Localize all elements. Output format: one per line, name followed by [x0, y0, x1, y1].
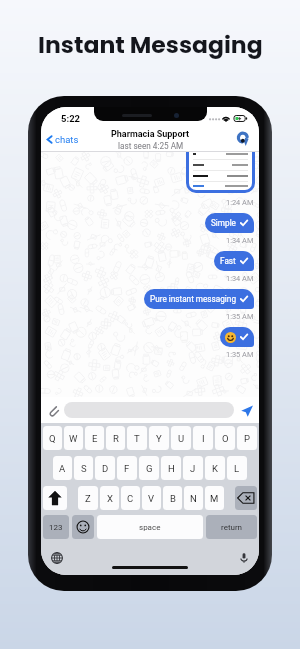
button[interactable]: [186, 152, 255, 193]
button[interactable]: Y: [149, 426, 169, 450]
staticText: 1:35 AM: [226, 350, 254, 359]
button[interactable]: P: [237, 426, 257, 450]
button[interactable]: Q: [43, 426, 62, 450]
button[interactable]: R: [106, 426, 125, 450]
button[interactable]: N: [184, 486, 203, 510]
button[interactable]: Shift: [43, 486, 67, 510]
staticText: E: [92, 433, 98, 444]
staticText: M: [210, 493, 219, 504]
button[interactable]: K: [205, 456, 225, 480]
button[interactable]: Change keyboard: [49, 550, 64, 565]
button[interactable]: Send message: [239, 403, 254, 418]
staticText: Instant Messaging: [38, 28, 263, 61]
staticText: T: [134, 433, 140, 444]
button[interactable]: Fast: [214, 251, 254, 271]
button[interactable]: M: [205, 486, 224, 510]
staticText: return: [221, 523, 243, 532]
button[interactable]: Smiley message: [220, 327, 254, 347]
button[interactable]: Simple: [205, 213, 254, 233]
staticText: 1:34 AM: [226, 236, 254, 245]
button[interactable]: J: [183, 456, 203, 480]
staticText: U: [178, 433, 185, 444]
button[interactable]: return: [206, 515, 257, 539]
staticText: P: [244, 433, 250, 444]
button[interactable]: T: [127, 426, 147, 450]
staticText: L: [234, 463, 240, 474]
staticText: Pure instant messaging: [150, 294, 236, 304]
button[interactable]: V: [142, 486, 161, 510]
button[interactable]: Z: [78, 486, 98, 510]
staticText: 123: [49, 523, 63, 532]
staticText: X: [107, 493, 113, 504]
staticText: O: [222, 433, 229, 444]
staticText: 5:22: [61, 113, 81, 124]
button[interactable]: I: [193, 426, 213, 450]
button[interactable]: L: [227, 456, 247, 480]
button[interactable]: B: [163, 486, 182, 510]
button[interactable]: Attach file: [46, 403, 61, 418]
staticText: S: [81, 463, 87, 474]
button[interactable]: S: [74, 456, 93, 480]
button[interactable]: Emoji: [72, 515, 94, 539]
staticText: last seen 4:25 AM: [118, 141, 184, 151]
staticText: chats: [55, 134, 79, 145]
button[interactable]: D: [95, 456, 115, 480]
button[interactable]: Contact profile: [235, 131, 252, 148]
staticText: 1:35 AM: [226, 312, 254, 321]
button[interactable]: X: [100, 486, 119, 510]
button[interactable]: Backspace: [235, 486, 257, 510]
staticText: R: [113, 433, 119, 444]
staticText: D: [102, 463, 109, 474]
button[interactable]: O: [215, 426, 235, 450]
staticText: Simple: [211, 218, 236, 228]
staticText: C: [127, 493, 134, 504]
staticText: B: [170, 493, 176, 504]
staticText: F: [124, 463, 130, 474]
button[interactable]: F: [117, 456, 137, 480]
button[interactable]: space: [97, 515, 203, 539]
button[interactable]: G: [139, 456, 159, 480]
staticText: space: [139, 523, 161, 532]
staticText: K: [212, 463, 218, 474]
button[interactable]: W: [64, 426, 83, 450]
staticText: Z: [85, 493, 91, 504]
button[interactable]: 123: [43, 515, 69, 539]
button[interactable]: H: [161, 456, 181, 480]
staticText: H: [168, 463, 175, 474]
button[interactable]: Voice input: [236, 550, 251, 565]
staticText: Pharmacia Support: [111, 129, 190, 140]
button[interactable]: E: [85, 426, 104, 450]
staticText: J: [190, 463, 196, 474]
staticText: Fast: [220, 256, 236, 266]
staticText: 1:34 AM: [226, 274, 254, 283]
button[interactable]: U: [171, 426, 191, 450]
staticText: Y: [156, 433, 162, 444]
staticText: A: [59, 463, 66, 474]
staticText: W: [69, 433, 78, 444]
button[interactable]: C: [121, 486, 140, 510]
staticText: V: [148, 493, 155, 504]
staticText: Q: [49, 433, 56, 444]
button[interactable]: [64, 402, 234, 418]
staticText: 1:24 AM: [226, 198, 254, 207]
staticText: N: [190, 493, 197, 504]
staticText: G: [146, 463, 153, 474]
button[interactable]: chats: [41, 130, 85, 149]
button[interactable]: A: [53, 456, 72, 480]
button[interactable]: Pure instant messaging: [144, 289, 254, 309]
staticText: I: [202, 433, 205, 444]
